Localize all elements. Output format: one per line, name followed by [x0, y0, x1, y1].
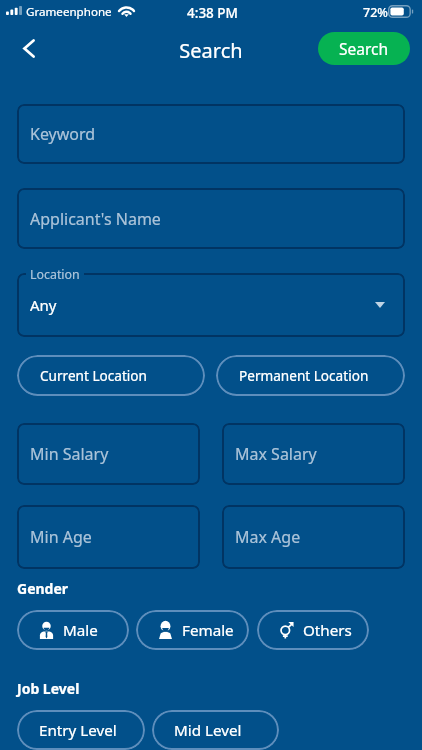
staticText: Max Salary	[235, 443, 317, 465]
button[interactable]: Mid Level	[152, 710, 279, 750]
button[interactable]: Min Age	[17, 505, 200, 569]
staticText: Search	[339, 38, 389, 59]
staticText: Applicant's Name	[30, 208, 161, 230]
staticText: 4:38 PM	[187, 4, 238, 22]
button[interactable]: Current Location	[17, 355, 205, 396]
button[interactable]: Min Salary	[17, 423, 200, 485]
staticText: Gender	[17, 579, 69, 598]
staticText: 72%	[363, 4, 388, 21]
button[interactable]: Applicant's Name	[17, 188, 405, 249]
staticText: Keyword	[30, 123, 96, 145]
button[interactable]: Keyword	[17, 104, 405, 164]
staticText: Permanent Location	[239, 366, 369, 385]
button[interactable]: Max Age	[222, 505, 405, 569]
staticText: Location	[30, 266, 80, 283]
staticText: Min Age	[30, 526, 92, 548]
staticText: Job Level	[17, 679, 80, 698]
staticText: Male	[63, 620, 98, 641]
button[interactable]: Max Salary	[222, 423, 405, 485]
button[interactable]: Others	[257, 610, 369, 650]
button[interactable]: Female	[136, 610, 249, 650]
button[interactable]: Male	[17, 610, 129, 650]
staticText: Current Location	[40, 366, 147, 385]
staticText: Female	[182, 620, 234, 641]
staticText: Max Age	[235, 526, 301, 548]
button[interactable]: Entry Level	[17, 710, 145, 750]
staticText: Others	[303, 620, 352, 641]
staticText: Min Salary	[30, 443, 109, 465]
button[interactable]: Permanent Location	[216, 355, 405, 396]
button[interactable]	[17, 273, 405, 337]
button[interactable]: Back	[6, 26, 51, 71]
staticText: Any	[30, 295, 57, 315]
button[interactable]: Search	[318, 32, 410, 65]
staticText: Search	[0, 37, 422, 64]
staticText: Entry Level	[39, 720, 117, 741]
staticText: Grameenphone	[26, 4, 112, 20]
staticText: Mid Level	[174, 720, 242, 741]
